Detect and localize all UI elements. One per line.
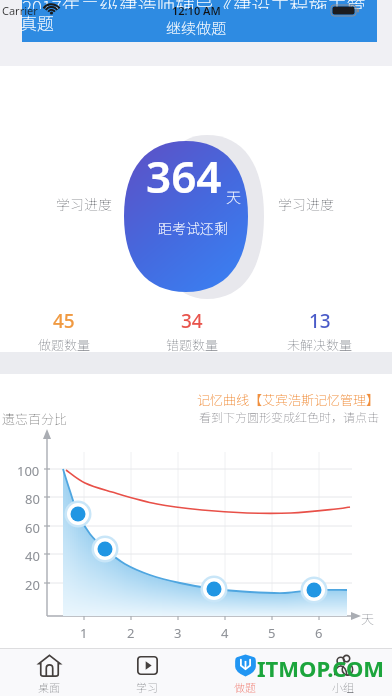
staticText: 继续做题 <box>166 17 227 39</box>
button[interactable]: 继续做题 <box>166 17 227 39</box>
staticText: 5 <box>268 624 276 642</box>
staticText: 天 <box>361 609 375 628</box>
staticText: 看到下方圆形变成红色时，请点击 <box>199 408 380 425</box>
staticText: 做题 <box>234 679 256 695</box>
staticText: 34 <box>181 308 203 334</box>
staticText: 桌面 <box>38 679 60 695</box>
button[interactable]: 真题 <box>20 10 54 35</box>
button[interactable]: 小组 <box>294 649 392 696</box>
button[interactable]: 做题 <box>196 649 294 696</box>
staticText: 天 <box>226 186 242 208</box>
staticText: 60 <box>25 519 40 537</box>
staticText: 小组 <box>332 679 354 695</box>
staticText: 未解决数量 <box>287 335 353 354</box>
staticText: 12:10 AM <box>172 3 221 18</box>
staticText: 学习进度 <box>278 194 334 214</box>
staticText: 100 <box>17 462 40 480</box>
staticText: 真题 <box>20 10 54 35</box>
staticText: 做题数量 <box>38 335 91 354</box>
staticText: 20 <box>25 576 40 594</box>
staticText: 40 <box>25 547 40 565</box>
staticText: 3 <box>174 624 182 642</box>
staticText: ITMOP.COM <box>257 653 385 683</box>
button[interactable]: 桌面 <box>0 649 98 696</box>
staticText: 错题数量 <box>166 335 219 354</box>
staticText: 距考试还剩 <box>158 218 228 238</box>
button[interactable]: 学习 <box>98 649 196 696</box>
staticText: 1 <box>80 624 88 642</box>
staticText: 记忆曲线【艾宾浩斯记忆管理】 <box>197 390 380 409</box>
staticText: 2017年二级建造师辅导《建设工程施工管理》 <box>22 0 377 9</box>
staticText: 80 <box>25 490 40 508</box>
staticText: 364 <box>146 146 222 206</box>
staticText: 13 <box>309 308 331 334</box>
staticText: 2 <box>127 624 135 642</box>
staticText: 遗忘百分比 <box>2 409 68 428</box>
staticText: 45 <box>53 308 75 334</box>
staticText: Carrier <box>2 3 38 18</box>
staticText: 4 <box>221 624 229 642</box>
staticText: 学习进度 <box>56 194 112 214</box>
staticText: 6 <box>315 624 323 642</box>
staticText: 学习 <box>136 679 158 695</box>
